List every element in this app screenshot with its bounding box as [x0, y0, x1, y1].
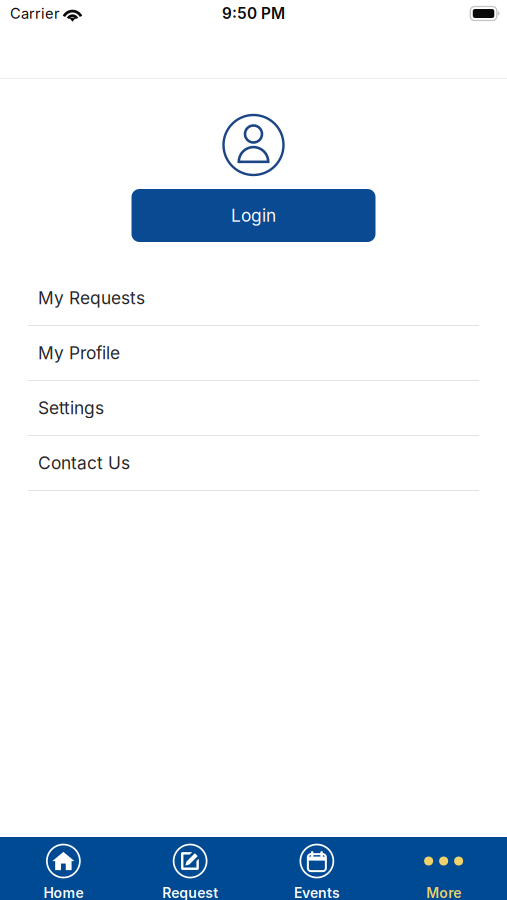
staticText: Login: [231, 205, 276, 226]
staticText: My Requests: [38, 287, 145, 308]
staticText: More: [426, 884, 461, 900]
button[interactable]: Login: [131, 189, 375, 242]
staticText: Contact Us: [38, 452, 130, 473]
staticText: Home: [43, 884, 83, 900]
button[interactable]: Events: [253, 833, 380, 900]
button[interactable]: More: [380, 833, 507, 900]
button[interactable]: Contact Us: [0, 436, 507, 491]
staticText: Request: [162, 884, 218, 900]
button[interactable]: My Requests: [0, 271, 507, 326]
button[interactable]: My Profile: [0, 326, 507, 381]
staticText: Carrier: [10, 5, 60, 22]
staticText: Events: [294, 884, 340, 900]
button[interactable]: Home: [0, 833, 127, 900]
staticText: My Profile: [38, 342, 120, 363]
button[interactable]: Settings: [0, 381, 507, 436]
staticText: Settings: [38, 397, 104, 418]
staticText: 9:50 PM: [222, 4, 285, 23]
button[interactable]: Request: [127, 833, 254, 900]
